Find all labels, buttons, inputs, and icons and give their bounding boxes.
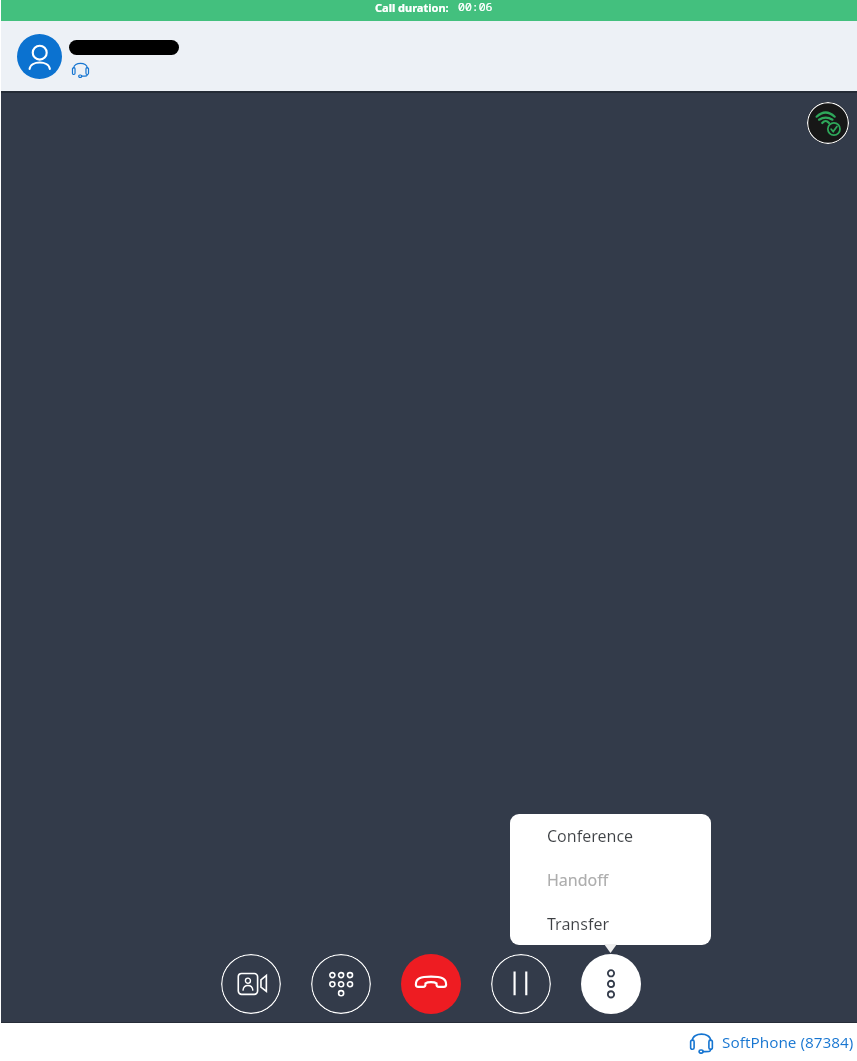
button[interactable]: End call [401,954,461,1014]
button[interactable]: SoftPhone (87384) [690,1023,854,1061]
staticText: SoftPhone (87384) [722,1032,854,1053]
button[interactable]: Connection quality [807,102,849,144]
staticText: Conference [547,825,634,847]
button[interactable]: Transfer [510,902,711,945]
staticText: 00:06 [458,0,493,15]
button[interactable]: Hold [491,954,551,1014]
staticText: Handoff [547,869,609,891]
button[interactable]: Conference [510,814,711,858]
button[interactable]: Dialpad [311,954,371,1014]
button[interactable]: More options [581,954,641,1014]
button[interactable]: Handoff [510,858,711,902]
button[interactable]: Contact avatar [17,34,62,79]
button[interactable]: Video call [221,954,281,1014]
staticText: Transfer [547,913,610,935]
staticText: Call duration: [375,0,449,15]
